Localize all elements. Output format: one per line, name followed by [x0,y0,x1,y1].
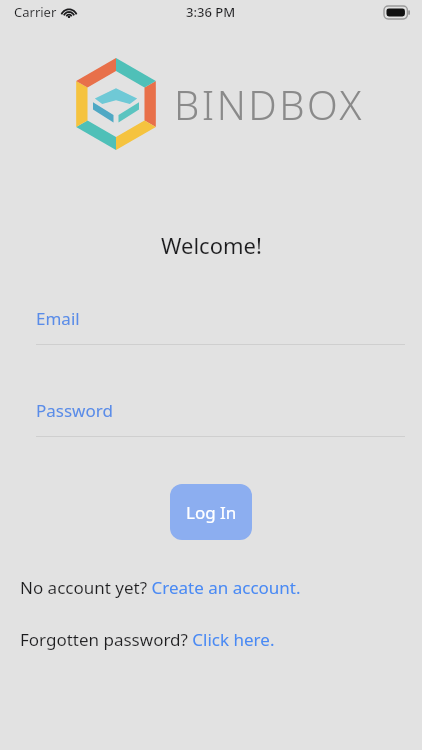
staticText: BINDBOX [174,77,364,131]
staticText: Forgotten password? Click here. [20,628,275,651]
button[interactable]: Password [0,399,422,437]
button[interactable]: No account yet? Create an account. [0,572,422,603]
staticText: Password [36,399,113,422]
staticText: Carrier [14,3,57,21]
button[interactable]: Log In [170,484,252,540]
staticText: Email [36,307,80,330]
staticText: Welcome! [161,230,262,260]
button[interactable]: Email [0,307,422,345]
staticText: Log In [186,501,237,524]
staticText: No account yet? Create an account. [20,576,301,599]
staticText: 3:36 PM [186,3,236,21]
button[interactable]: Forgotten password? Click here. [0,624,422,655]
